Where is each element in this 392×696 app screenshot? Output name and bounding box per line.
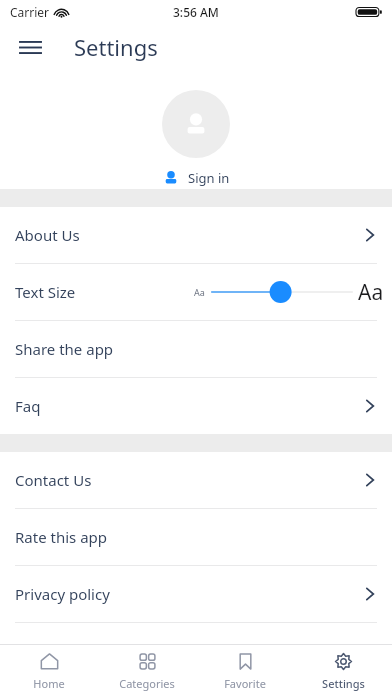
button[interactable]: Rate this app bbox=[0, 509, 392, 565]
staticText: Favorite bbox=[224, 676, 266, 691]
button[interactable]: About Us bbox=[0, 207, 392, 263]
staticText: Carrier bbox=[10, 4, 50, 20]
staticText: Aa bbox=[358, 278, 384, 307]
button[interactable]: Profile photo bbox=[162, 90, 230, 158]
staticText: Text Size bbox=[15, 282, 76, 302]
button[interactable]: Settings bbox=[294, 645, 392, 696]
button[interactable]: Faq bbox=[0, 378, 392, 434]
button[interactable]: Sign in bbox=[157, 167, 236, 189]
button[interactable]: Contact Us bbox=[0, 452, 392, 508]
button[interactable]: Categories bbox=[98, 645, 196, 696]
staticText: Settings bbox=[74, 32, 158, 62]
other: Text size slider bbox=[212, 279, 352, 305]
staticText: Faq bbox=[15, 396, 41, 416]
staticText: Settings bbox=[322, 676, 365, 691]
button[interactable]: Favorite bbox=[196, 645, 294, 696]
button[interactable]: Text Size bbox=[0, 264, 392, 320]
staticText: Categories bbox=[119, 676, 175, 691]
staticText: About Us bbox=[15, 225, 80, 245]
staticText: 3:56 AM bbox=[173, 4, 219, 20]
button[interactable]: Home bbox=[0, 645, 98, 696]
button[interactable]: Terms and Conditions bbox=[0, 623, 392, 679]
staticText: Contact Us bbox=[15, 470, 92, 490]
button[interactable]: Share the app bbox=[0, 321, 392, 377]
staticText: Share the app bbox=[15, 339, 114, 359]
button[interactable]: Menu bbox=[8, 25, 52, 69]
staticText: Rate this app bbox=[15, 527, 108, 547]
button[interactable]: Privacy policy bbox=[0, 566, 392, 622]
staticText: Terms and Conditions bbox=[15, 641, 169, 661]
staticText: Home bbox=[33, 676, 65, 691]
staticText: Aa bbox=[194, 286, 205, 298]
staticText: Privacy policy bbox=[15, 584, 110, 604]
staticText: Sign in bbox=[188, 169, 230, 187]
